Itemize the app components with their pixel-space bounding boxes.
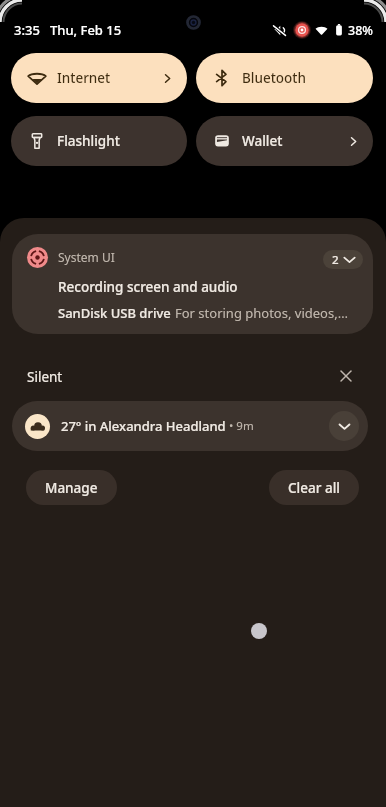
staticText: • 9m: [226, 418, 254, 434]
staticText: System UI: [58, 249, 115, 265]
button[interactable]: Manage: [26, 470, 117, 505]
staticText: SanDisk USB drive: [58, 304, 175, 322]
staticText: 3:35: [14, 21, 40, 39]
button[interactable]: Bluetooth: [196, 53, 373, 103]
button[interactable]: Expand notification: [329, 411, 359, 441]
button[interactable]: Flashlight: [11, 116, 187, 166]
staticText: For storing photos, videos,…: [175, 304, 348, 322]
staticText: Silent: [27, 368, 63, 386]
button[interactable]: Clear all: [269, 470, 359, 505]
button[interactable]: 27° in Alexandra Headland: [12, 401, 368, 451]
staticText: 38%: [348, 22, 373, 39]
staticText: Thu, Feb 15: [50, 21, 122, 39]
staticText: Manage: [45, 479, 98, 497]
button[interactable]: Clear silent notifications: [333, 363, 359, 389]
staticText: 27° in Alexandra Headland: [61, 417, 226, 435]
staticText: Recording screen and audio: [58, 278, 238, 296]
button[interactable]: Wallet: [196, 116, 373, 166]
staticText: Internet: [57, 69, 111, 87]
staticText: Clear all: [288, 479, 340, 497]
staticText: Bluetooth: [242, 69, 306, 87]
button[interactable]: System UI: [12, 234, 373, 334]
staticText: Flashlight: [57, 132, 120, 150]
staticText: 2: [332, 252, 339, 268]
button[interactable]: Expand group of 2 notifications: [323, 250, 363, 269]
button[interactable]: Internet: [11, 53, 187, 103]
staticText: Wallet: [242, 132, 283, 150]
